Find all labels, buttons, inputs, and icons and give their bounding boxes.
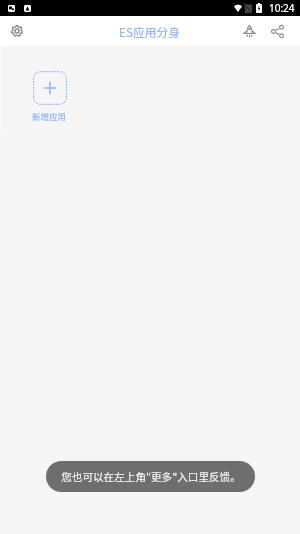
staticText: ES应用分身 — [119, 23, 181, 40]
staticText: 您也可以在左上角"更多"入口里反馈。 — [61, 469, 241, 484]
button[interactable]: 新增应用 — [0, 46, 99, 135]
button[interactable]: Boost — [236, 16, 263, 46]
staticText: 新增应用 — [32, 110, 67, 122]
button[interactable]: 您也可以在左上角"更多"入口里反馈。 — [46, 461, 255, 492]
staticText: 10:24 — [269, 1, 295, 15]
button[interactable]: Settings — [0, 16, 34, 46]
button[interactable]: Share — [263, 16, 291, 46]
